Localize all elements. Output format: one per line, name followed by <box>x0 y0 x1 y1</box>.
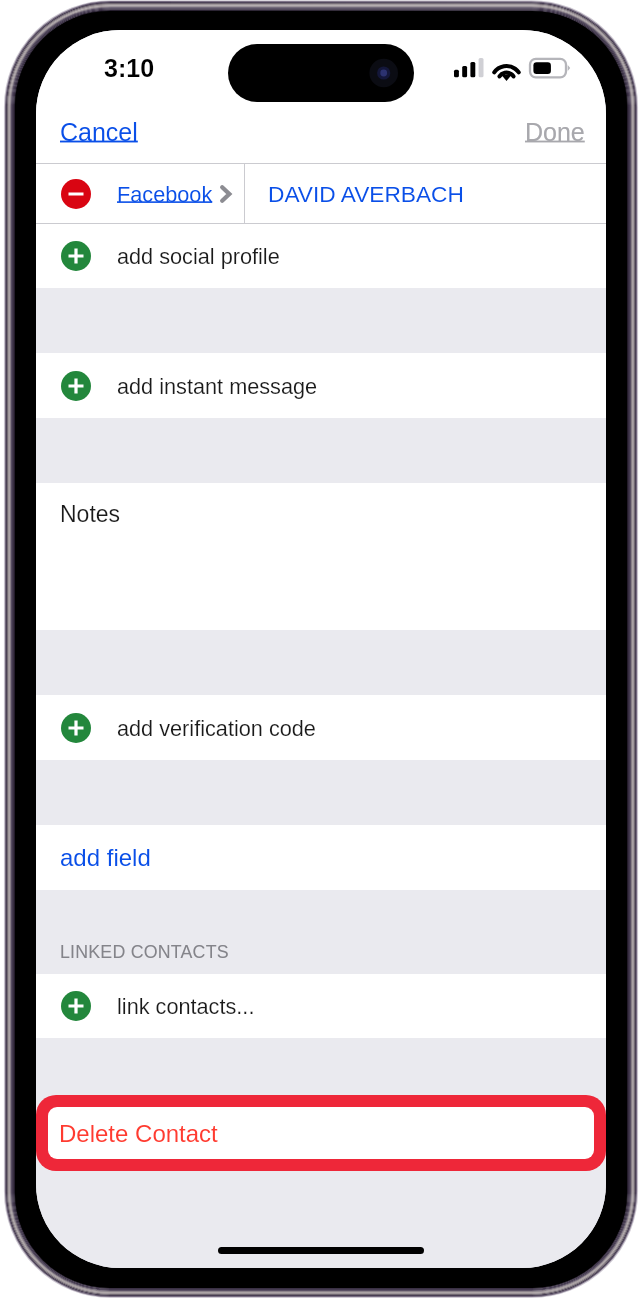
staticText: Cancel <box>60 118 138 146</box>
button[interactable]: Facebook <box>36 164 606 223</box>
button[interactable]: add field <box>36 825 606 890</box>
staticText: link contacts... <box>117 994 255 1018</box>
button[interactable]: Cancel <box>60 118 138 146</box>
button[interactable]: link contacts... <box>36 974 606 1038</box>
button[interactable]: add verification code <box>36 695 606 760</box>
staticText: 3:10 <box>104 54 155 82</box>
button[interactable]: Notes <box>36 483 606 630</box>
button[interactable]: Done <box>525 118 585 146</box>
button[interactable]: add social profile <box>36 224 606 288</box>
staticText: Delete Contact <box>59 1120 218 1147</box>
staticText: add field <box>60 844 151 871</box>
staticText: LINKED CONTACTS <box>60 942 229 962</box>
staticText: add verification code <box>117 716 316 740</box>
button[interactable]: Delete Contact <box>48 1107 594 1159</box>
staticText: Notes <box>60 501 121 527</box>
staticText: Facebook <box>117 182 213 206</box>
staticText: add social profile <box>117 244 280 268</box>
staticText: add instant message <box>117 374 318 398</box>
staticText: Done <box>525 118 585 146</box>
button[interactable]: add instant message <box>36 353 606 418</box>
staticText: DAVID AVERBACH <box>268 181 464 206</box>
